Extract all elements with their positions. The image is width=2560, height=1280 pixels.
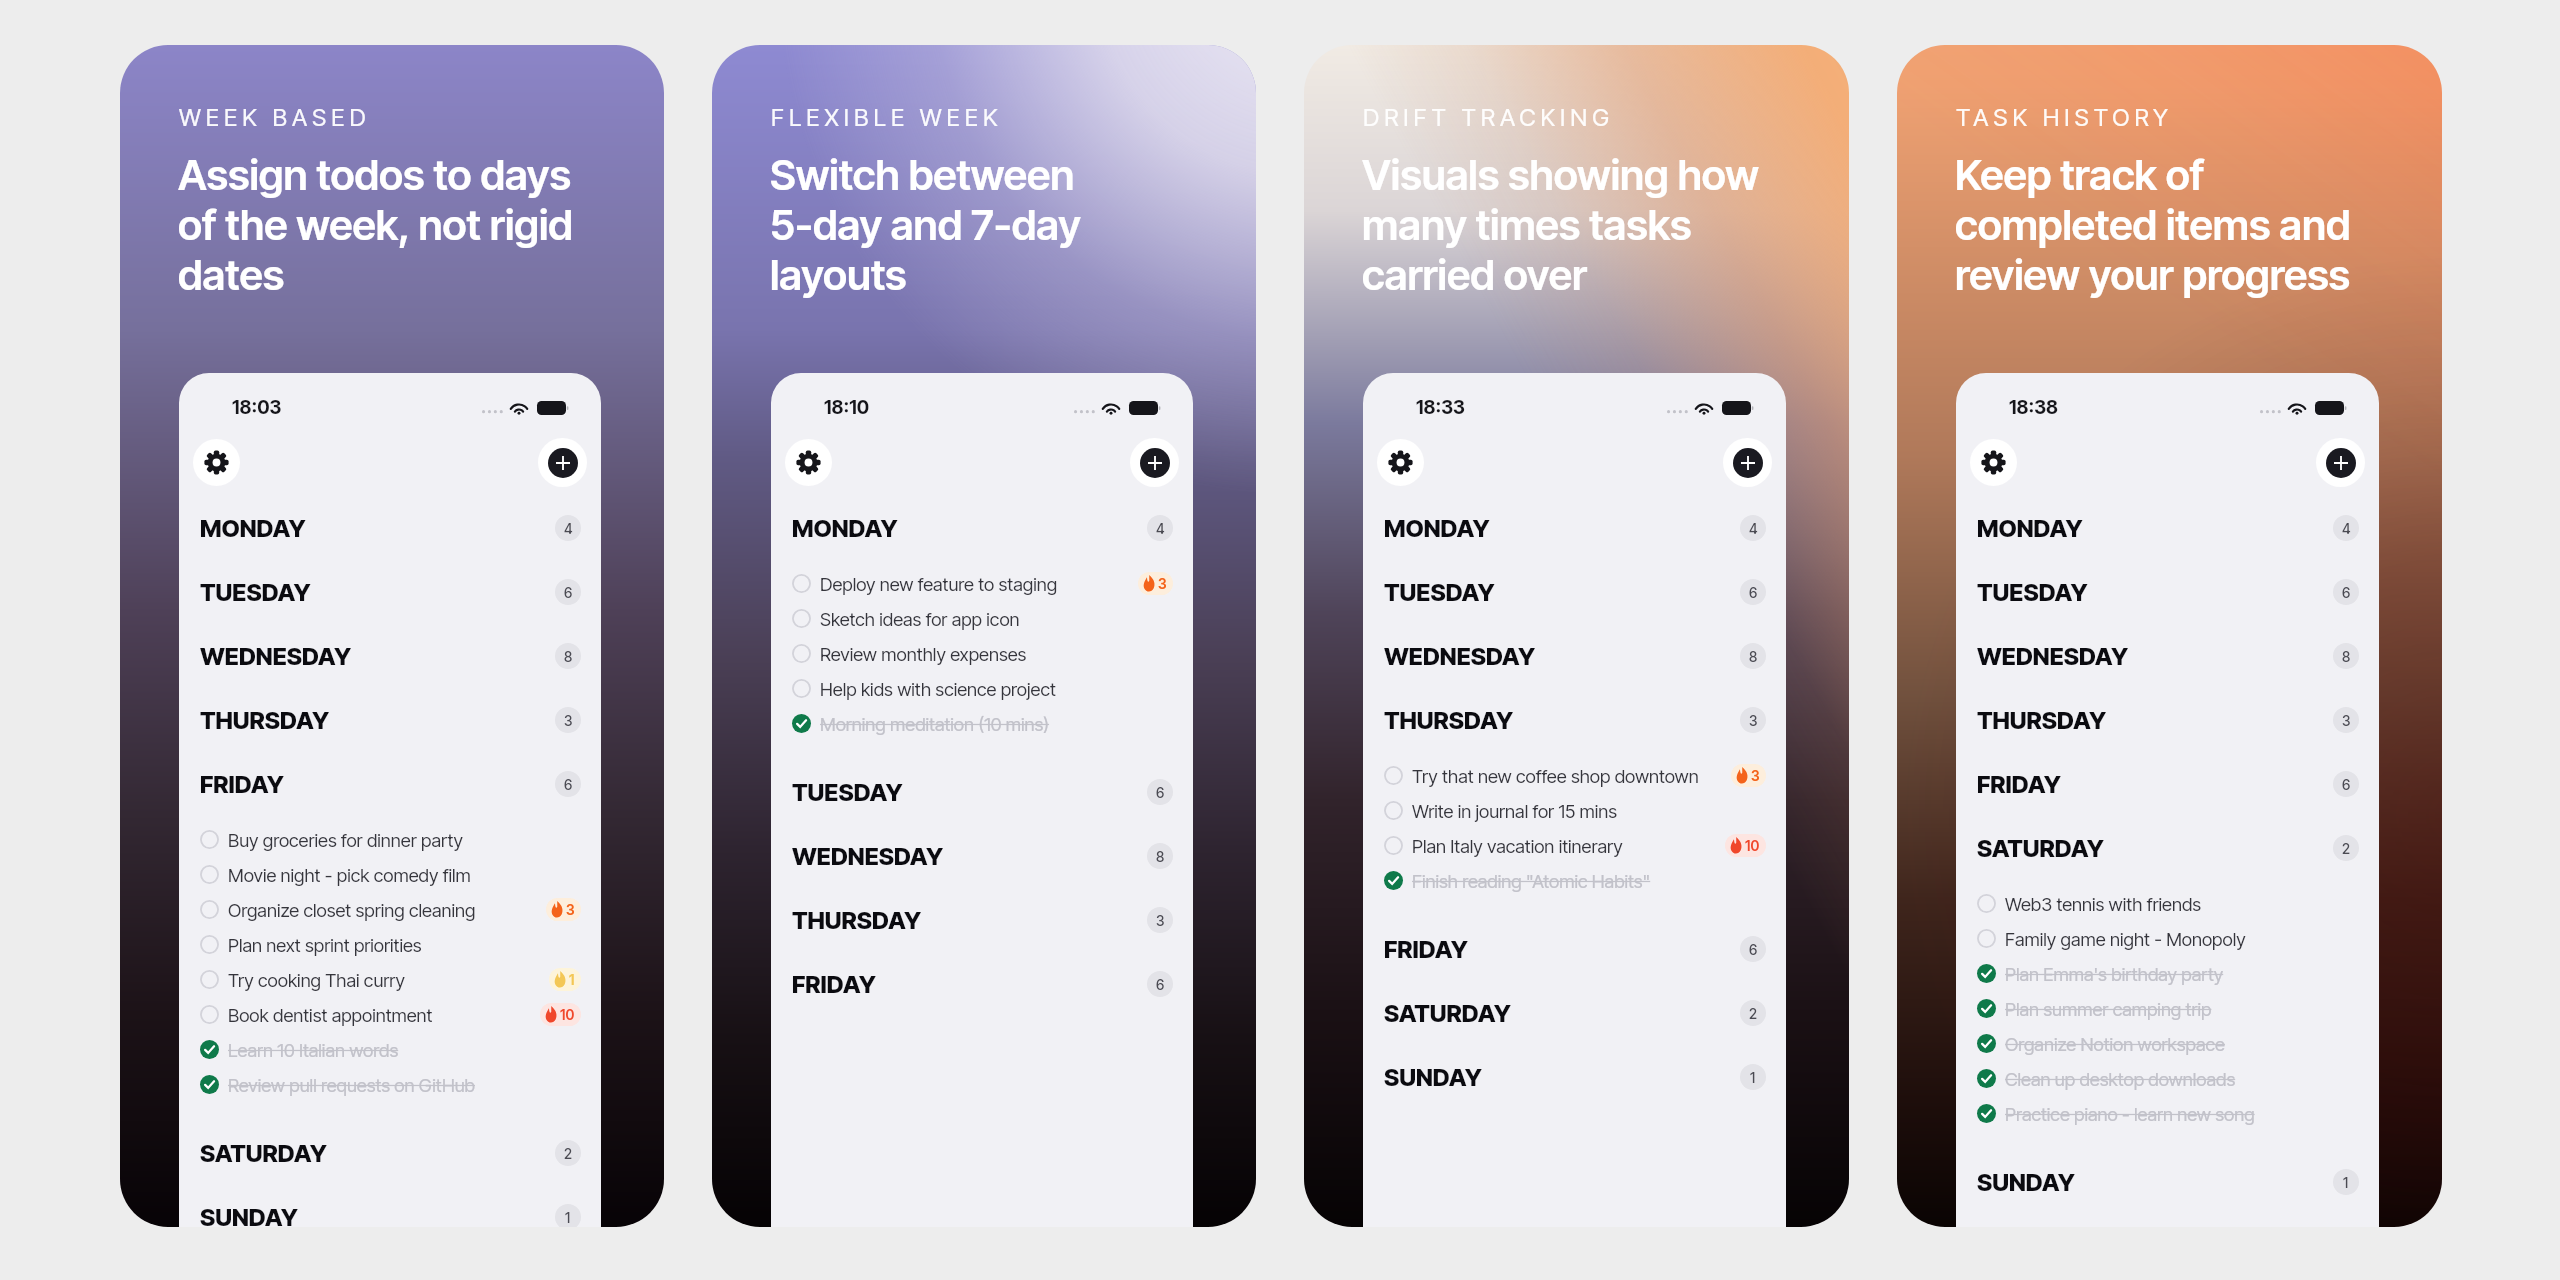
button[interactable]: TUESDAY xyxy=(792,760,1173,824)
staticText: Sketch ideas for app icon xyxy=(820,608,1020,630)
staticText: Morning meditation (10 mins) xyxy=(820,713,1050,735)
staticText: FRIDAY xyxy=(1977,770,2061,799)
staticText: 6 xyxy=(564,776,573,793)
button[interactable]: Try cooking Thai curry xyxy=(200,962,581,997)
staticText: FRIDAY xyxy=(200,770,284,799)
button[interactable]: Settings xyxy=(1377,439,1424,486)
button[interactable]: Review monthly expenses xyxy=(792,636,1173,671)
button[interactable]: FRIDAY xyxy=(792,952,1173,1016)
button[interactable]: MONDAY xyxy=(200,496,581,560)
staticText: 6 xyxy=(1156,976,1165,993)
button[interactable]: MONDAY xyxy=(1384,496,1766,560)
staticText: FRIDAY xyxy=(792,970,876,999)
button[interactable]: Movie night - pick comedy film xyxy=(200,857,581,892)
button[interactable]: Web3 tennis with friends xyxy=(1977,886,2359,921)
button[interactable]: Plan next sprint priorities xyxy=(200,927,581,962)
staticText: Web3 tennis with friends xyxy=(2005,893,2202,915)
staticText: WEEK BASED xyxy=(179,103,371,132)
staticText: 6 xyxy=(564,584,573,601)
staticText: MONDAY xyxy=(1384,514,1490,543)
button[interactable]: SATURDAY xyxy=(1384,981,1766,1045)
button[interactable]: Settings xyxy=(785,439,832,486)
staticText: Review pull requests on GitHub xyxy=(228,1074,475,1096)
staticText: 3 xyxy=(1749,712,1758,729)
staticText: 18:38 xyxy=(2009,396,2058,419)
button[interactable]: FRIDAY xyxy=(200,752,581,816)
button[interactable]: SUNDAY xyxy=(1977,1150,2359,1214)
staticText: Try cooking Thai curry xyxy=(228,969,406,991)
button[interactable]: Buy groceries for dinner party xyxy=(200,822,581,857)
staticText: Plan Italy vacation itinerary xyxy=(1412,835,1623,857)
staticText: TUESDAY xyxy=(200,578,311,607)
button[interactable]: THURSDAY xyxy=(792,888,1173,952)
button[interactable]: MONDAY xyxy=(792,496,1173,560)
staticText: THURSDAY xyxy=(1977,706,2107,735)
button[interactable]: Settings xyxy=(1970,439,2017,486)
staticText: 6 xyxy=(1156,784,1165,801)
button[interactable]: Learn 10 Italian words xyxy=(200,1032,581,1067)
button[interactable]: Deploy new feature to staging xyxy=(792,566,1173,601)
staticText: 3 xyxy=(1751,767,1760,784)
staticText: FLEXIBLE WEEK xyxy=(771,103,1003,132)
staticText: 18:03 xyxy=(232,396,282,419)
button[interactable]: Add task xyxy=(1130,438,1179,487)
button[interactable]: TUESDAY xyxy=(200,560,581,624)
staticText: SUNDAY xyxy=(200,1203,298,1227)
staticText: Practice piano - learn new song xyxy=(2005,1103,2255,1125)
button[interactable]: SUNDAY xyxy=(1384,1045,1766,1109)
button[interactable]: TUESDAY xyxy=(1384,560,1766,624)
button[interactable]: WEDNESDAY xyxy=(200,624,581,688)
button[interactable]: Sketch ideas for app icon xyxy=(792,601,1173,636)
button[interactable]: Add task xyxy=(538,438,587,487)
button[interactable]: TUESDAY xyxy=(1977,560,2359,624)
staticText: WEDNESDAY xyxy=(1977,642,2129,671)
button[interactable]: Plan summer camping trip xyxy=(1977,991,2359,1026)
staticText: 3 xyxy=(1156,912,1165,929)
button[interactable]: THURSDAY xyxy=(1977,688,2359,752)
staticText: 10 xyxy=(1745,837,1760,854)
staticText: 3 xyxy=(564,712,573,729)
button[interactable]: Add task xyxy=(2316,438,2365,487)
button[interactable]: THURSDAY xyxy=(200,688,581,752)
button[interactable]: Plan Emma's birthday party xyxy=(1977,956,2359,991)
button[interactable]: Help kids with science project xyxy=(792,671,1173,706)
staticText: TASK HISTORY xyxy=(1956,103,2173,132)
button[interactable]: Morning meditation (10 mins) xyxy=(792,706,1173,741)
button[interactable]: WEDNESDAY xyxy=(792,824,1173,888)
button[interactable]: Book dentist appointment xyxy=(200,997,581,1032)
staticText: Switch between 5-day and 7-day layouts xyxy=(770,149,1081,301)
staticText: 8 xyxy=(1749,648,1758,665)
button[interactable]: Clean up desktop downloads xyxy=(1977,1061,2359,1096)
button[interactable]: Plan Italy vacation itinerary xyxy=(1384,828,1766,863)
button[interactable]: Organize closet spring cleaning xyxy=(200,892,581,927)
button[interactable]: Practice piano - learn new song xyxy=(1977,1096,2359,1131)
button[interactable]: Add task xyxy=(1723,438,1772,487)
staticText: Organize closet spring cleaning xyxy=(228,899,476,921)
button[interactable]: Review pull requests on GitHub xyxy=(200,1067,581,1102)
button[interactable]: FRIDAY xyxy=(1384,917,1766,981)
button[interactable]: SATURDAY xyxy=(200,1121,581,1185)
staticText: 6 xyxy=(2342,584,2351,601)
button[interactable]: Organize Notion workspace xyxy=(1977,1026,2359,1061)
button[interactable]: SUNDAY xyxy=(200,1185,581,1227)
staticText: WEDNESDAY xyxy=(200,642,352,671)
staticText: MONDAY xyxy=(200,514,306,543)
button[interactable]: FRIDAY xyxy=(1977,752,2359,816)
button[interactable]: THURSDAY xyxy=(1384,688,1766,752)
button[interactable]: MONDAY xyxy=(1977,496,2359,560)
staticText: Family game night - Monopoly xyxy=(2005,928,2246,950)
staticText: Review monthly expenses xyxy=(820,643,1027,665)
staticText: SATURDAY xyxy=(1384,999,1512,1028)
staticText: 1 xyxy=(1750,1069,1756,1086)
staticText: 2 xyxy=(564,1145,572,1162)
button[interactable]: Write in journal for 15 mins xyxy=(1384,793,1766,828)
button[interactable]: Settings xyxy=(193,439,240,486)
staticText: THURSDAY xyxy=(200,706,330,735)
button[interactable]: Family game night - Monopoly xyxy=(1977,921,2359,956)
button[interactable]: Finish reading "Atomic Habits" xyxy=(1384,863,1766,898)
staticText: Assign todos to days of the week, not ri… xyxy=(178,149,573,301)
button[interactable]: WEDNESDAY xyxy=(1384,624,1766,688)
button[interactable]: WEDNESDAY xyxy=(1977,624,2359,688)
button[interactable]: SATURDAY xyxy=(1977,816,2359,880)
button[interactable]: Try that new coffee shop downtown xyxy=(1384,758,1766,793)
